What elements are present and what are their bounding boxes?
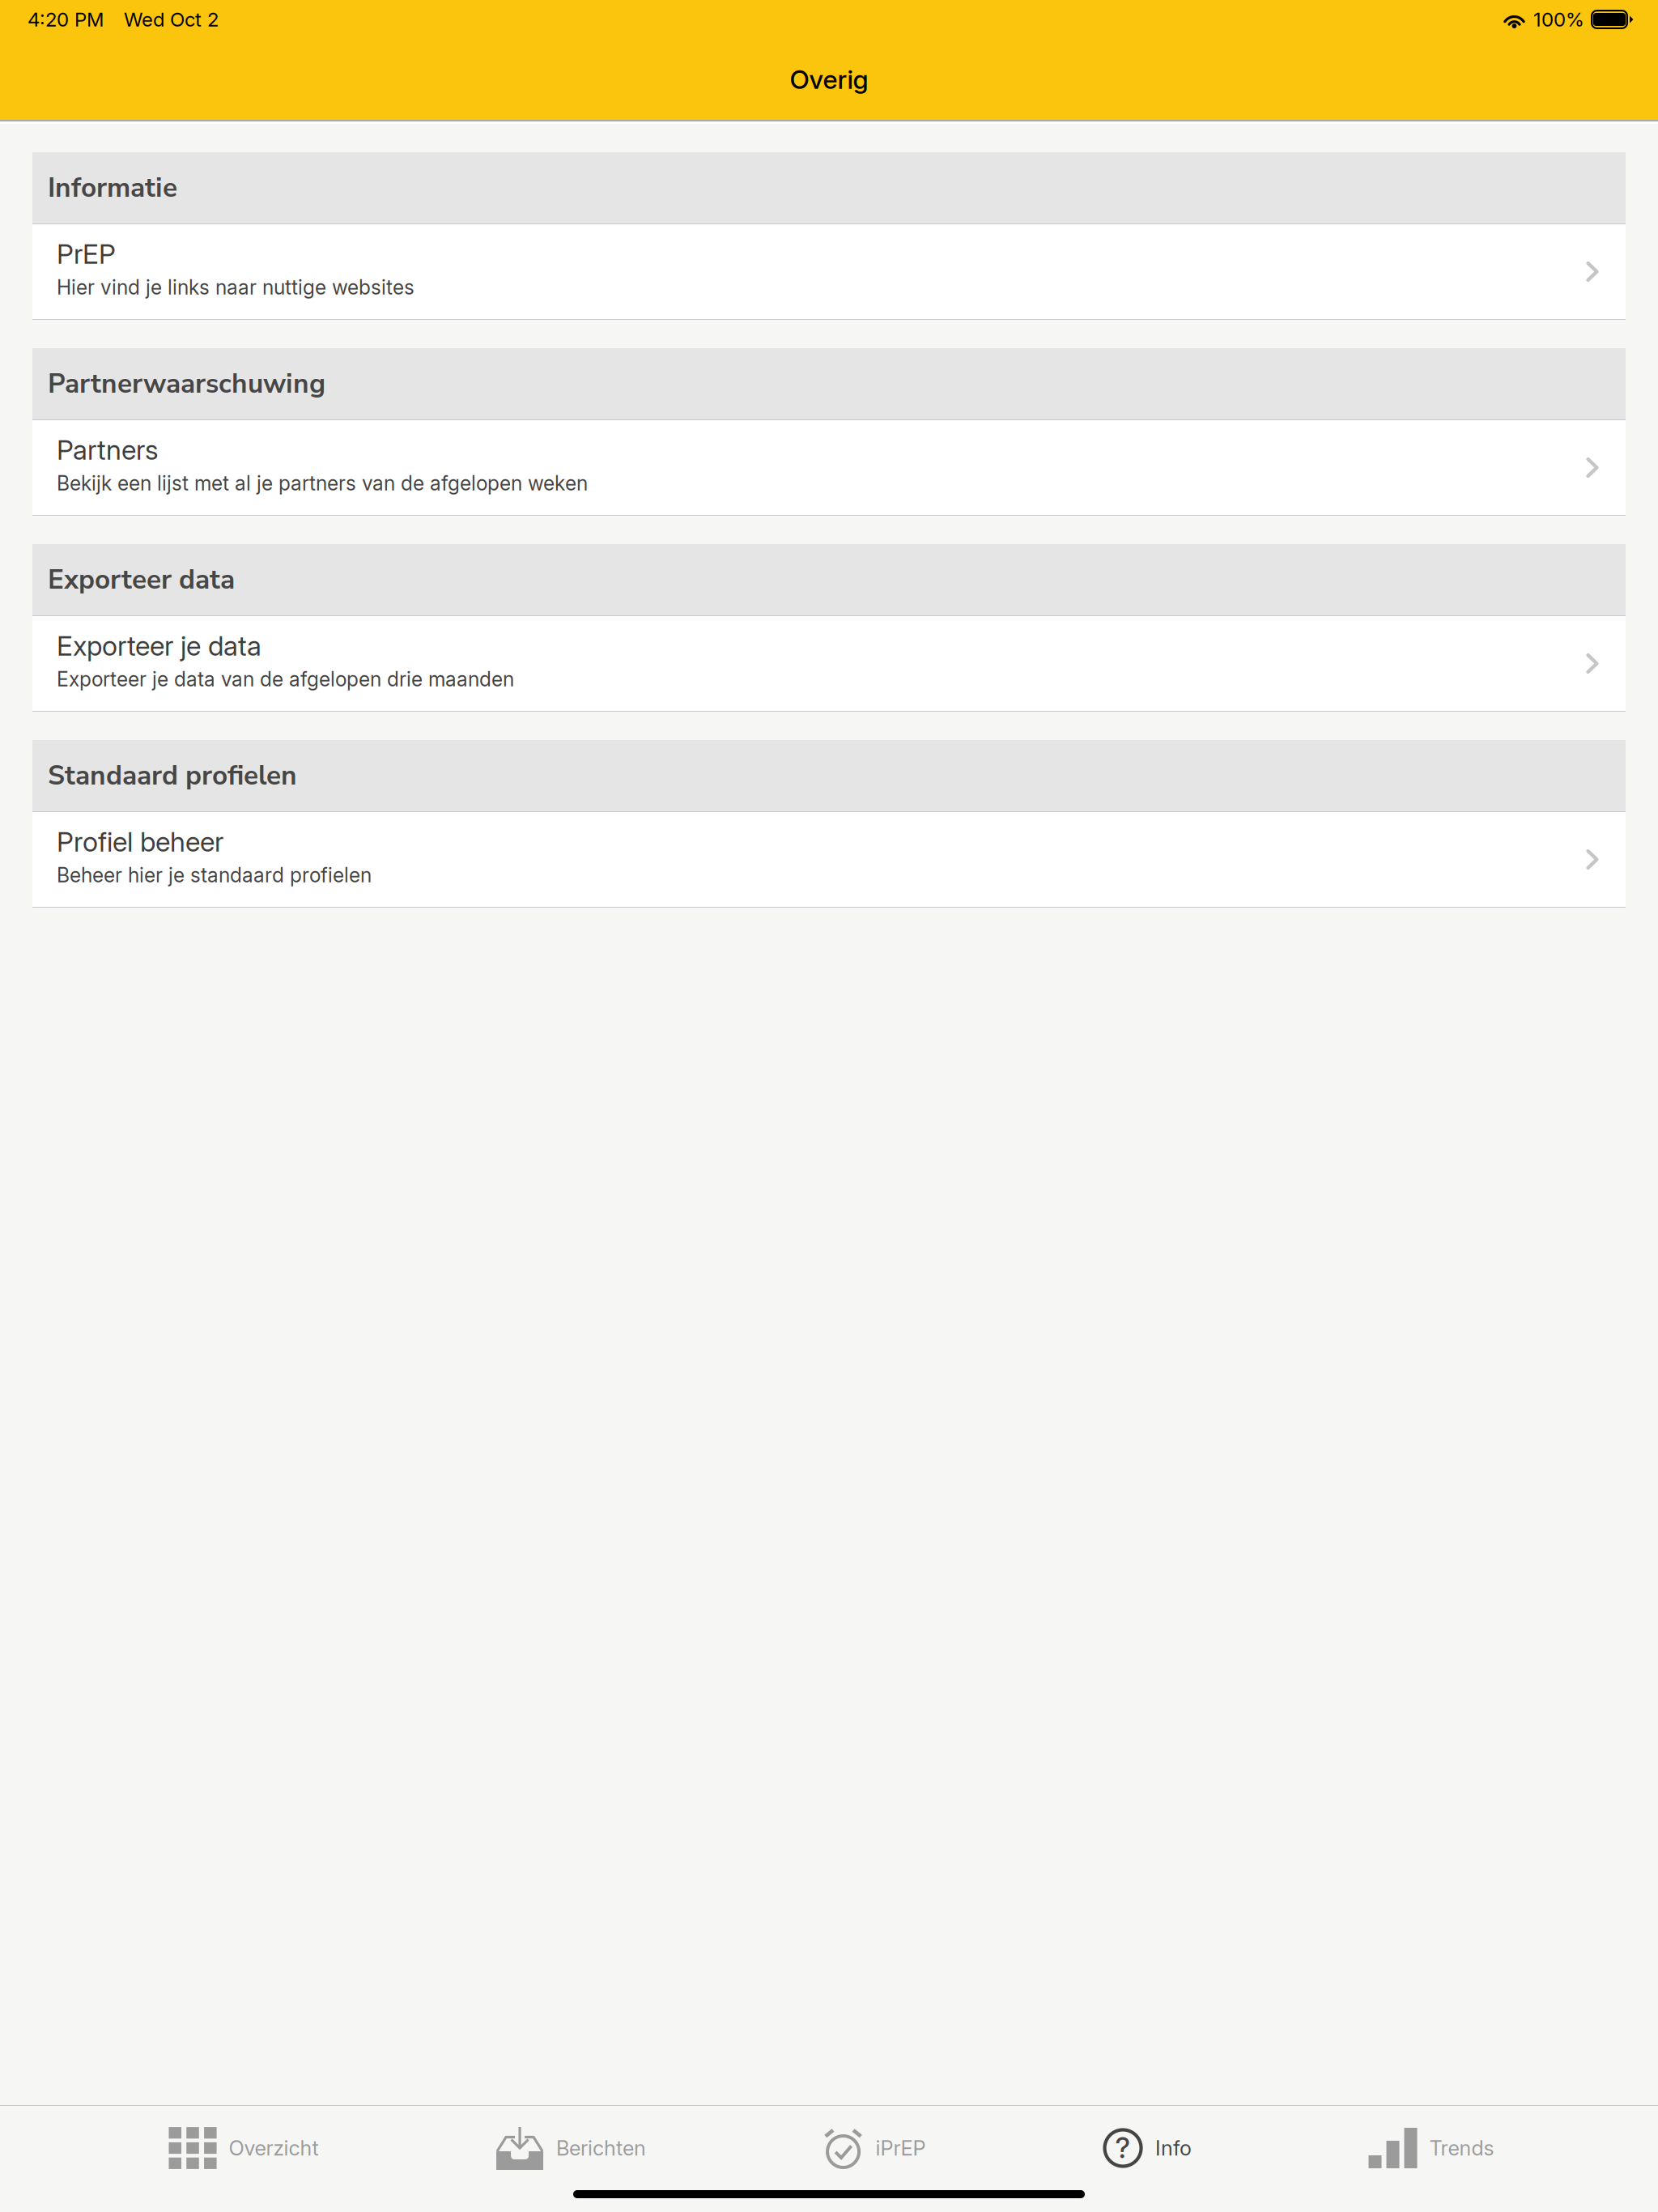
- staticText: Overzicht: [229, 2136, 319, 2161]
- staticText: Beheer hier je standaard profielen: [57, 863, 372, 887]
- button[interactable]: Overzicht: [140, 2106, 348, 2190]
- button[interactable]: ?: [1073, 2106, 1221, 2190]
- staticText: Informatie: [48, 169, 177, 206]
- staticText: 100%: [1533, 8, 1584, 31]
- staticText: Standaard profielen: [48, 757, 297, 794]
- button[interactable]: Partners: [32, 420, 1626, 515]
- staticText: Exporteer je data van de afgelopen drie …: [57, 667, 514, 691]
- staticText: ?: [1115, 2131, 1131, 2165]
- staticText: Info: [1155, 2136, 1192, 2161]
- staticText: 4:20 PM: [28, 8, 104, 31]
- staticText: Profiel beheer: [57, 825, 223, 858]
- staticText: Partnerwaarschuwing: [48, 365, 325, 402]
- staticText: PrEP: [57, 238, 116, 270]
- staticText: Exporteer je data: [57, 629, 261, 662]
- staticText: Wed Oct 2: [124, 8, 219, 31]
- staticText: Berichten: [556, 2136, 646, 2161]
- button[interactable]: iPrEP: [794, 2106, 955, 2190]
- staticText: iPrEP: [876, 2136, 926, 2161]
- staticText: Bekijk een lijst met al je partners van …: [57, 471, 588, 495]
- staticText: Hier vind je links naar nuttige websites: [57, 275, 414, 299]
- button[interactable]: Profiel beheer: [32, 812, 1626, 907]
- staticText: Exporteer data: [48, 561, 235, 598]
- staticText: Overig: [790, 64, 868, 95]
- staticText: Partners: [57, 433, 159, 466]
- staticText: Trends: [1429, 2136, 1494, 2161]
- button[interactable]: Exporteer je data: [32, 616, 1626, 711]
- button[interactable]: PrEP: [32, 224, 1626, 319]
- button[interactable]: Trends: [1339, 2106, 1523, 2190]
- button[interactable]: Berichten: [466, 2106, 675, 2190]
